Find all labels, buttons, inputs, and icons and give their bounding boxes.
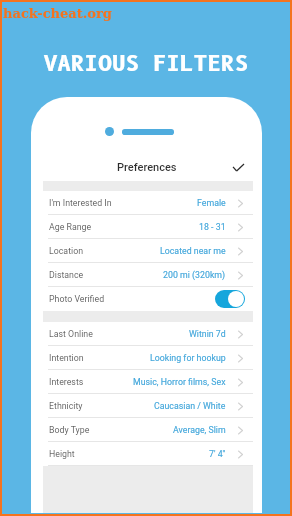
staticText: 7' 4'' xyxy=(209,449,226,459)
button[interactable]: Photo Verified xyxy=(43,287,253,311)
button[interactable]: Interests xyxy=(43,370,253,394)
staticText: Looking for hookup xyxy=(150,353,226,363)
staticText: Located near me xyxy=(160,246,226,256)
button[interactable]: Body Type xyxy=(43,418,253,442)
staticText: Witnin 7d xyxy=(189,329,226,339)
staticText: Interests xyxy=(49,377,84,387)
staticText: Photo Verified xyxy=(49,294,105,304)
button[interactable]: Ethnicity xyxy=(43,394,253,418)
staticText: Female xyxy=(197,198,226,208)
button[interactable]: Last Online xyxy=(43,322,253,346)
button[interactable]: Done xyxy=(233,164,244,171)
staticText: 18 - 31 xyxy=(199,222,226,232)
staticText: Last Online xyxy=(49,329,93,339)
staticText: Height xyxy=(49,449,75,459)
staticText: Preferences xyxy=(117,161,177,174)
button[interactable]: Location xyxy=(43,239,253,263)
staticText: Caucasian / White xyxy=(154,401,226,411)
staticText: Body Type xyxy=(49,425,90,435)
staticText: hack-cheat.org xyxy=(3,6,112,21)
staticText: 200 mi (320km) xyxy=(163,270,226,280)
staticText: Intention xyxy=(49,353,84,363)
staticText: Music, Horror films, Sex xyxy=(133,377,226,387)
button[interactable]: Distance xyxy=(43,263,253,287)
staticText: Age Range xyxy=(49,222,92,232)
staticText: Distance xyxy=(49,270,84,280)
staticText: Ethnicity xyxy=(49,401,83,411)
staticText: VARIOUS FILTERS xyxy=(2,51,290,77)
button[interactable]: Height xyxy=(43,442,253,466)
staticText: Location xyxy=(49,246,84,256)
button[interactable]: Age Range xyxy=(43,215,253,239)
staticText: I'm Interested In xyxy=(49,198,112,208)
button[interactable]: Intention xyxy=(43,346,253,370)
button[interactable]: I'm Interested In xyxy=(43,191,253,215)
staticText: Average, Slim xyxy=(173,425,226,435)
